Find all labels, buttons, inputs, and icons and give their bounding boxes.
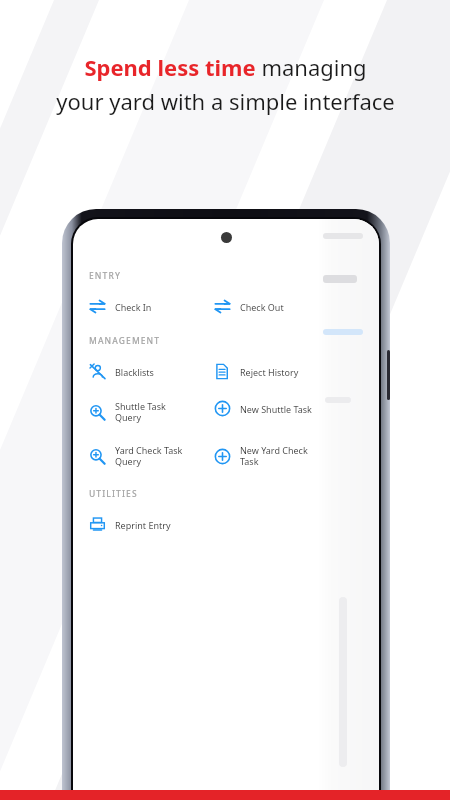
- button[interactable]: Check In: [89, 295, 214, 318]
- staticText: Spend less time managing: [84, 52, 367, 82]
- staticText: Reprint Entry: [115, 519, 171, 531]
- staticText: Check Out: [240, 301, 284, 313]
- staticText: Blacklists: [115, 366, 154, 378]
- staticText: New Shuttle Task: [240, 403, 312, 415]
- staticText: Shuttle Task Query: [115, 400, 166, 424]
- staticText: New Yard Check Task: [240, 444, 308, 468]
- button[interactable]: New Yard Check Task: [214, 441, 344, 471]
- staticText: your yard with a simple interface: [56, 86, 395, 116]
- button[interactable]: Yard Check Task Query: [89, 441, 214, 471]
- button[interactable]: Reprint Entry: [89, 513, 214, 536]
- staticText: MANAGEMENT: [89, 335, 161, 347]
- staticText: ENTRY: [89, 270, 121, 282]
- button[interactable]: New Shuttle Task: [214, 397, 344, 420]
- button[interactable]: Shuttle Task Query: [89, 397, 214, 427]
- staticText: Reject History: [240, 366, 299, 378]
- button[interactable]: Check Out: [214, 295, 344, 318]
- staticText: Check In: [115, 301, 152, 313]
- staticText: UTILITIES: [89, 488, 138, 500]
- button[interactable]: Blacklists: [89, 360, 214, 383]
- staticText: Yard Check Task Query: [115, 444, 183, 468]
- button[interactable]: Reject History: [214, 360, 344, 383]
